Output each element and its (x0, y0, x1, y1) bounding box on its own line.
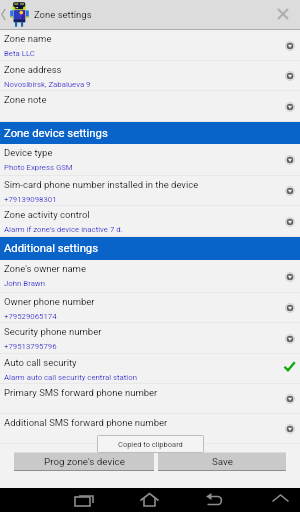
button[interactable]: Expand (285, 71, 295, 81)
staticText: Primary SMS forward phone number (4, 387, 158, 398)
staticText: Zone device settings (4, 127, 108, 140)
button[interactable]: Expand (285, 394, 295, 404)
staticText: Zone note (4, 94, 47, 105)
staticText: Zone settings (34, 9, 92, 20)
staticText: Zone address (4, 64, 62, 75)
staticText: Alarm if zone's device inactive 7 d. (4, 225, 123, 234)
button[interactable]: Prog zone's device (14, 452, 154, 471)
button[interactable]: Zone name (0, 30, 300, 61)
button[interactable]: Expand (285, 334, 295, 344)
button[interactable]: Save (158, 452, 286, 471)
staticText: Alarm auto call security central station (4, 373, 137, 382)
staticText: Additional SMS forward phone number (4, 417, 168, 428)
staticText: Zone's owner name (4, 263, 86, 274)
staticText: John Brawn (4, 279, 46, 288)
button[interactable]: Device type (0, 144, 300, 176)
button[interactable]: Zone's owner name (0, 260, 300, 293)
button[interactable]: Expand (285, 102, 295, 112)
button[interactable]: Expand (285, 424, 295, 434)
staticText: +79139098301 (4, 195, 57, 204)
staticText: Beta LLC (4, 49, 35, 58)
other: Enabled (284, 361, 295, 372)
staticText: Additional settings (4, 242, 99, 255)
button[interactable]: Primary SMS forward phone number (0, 384, 300, 414)
staticText: +79513795796 (4, 342, 57, 351)
staticText: Auto call security (4, 357, 77, 368)
button[interactable]: Zone note (0, 91, 300, 122)
staticText: Prog zone's device (44, 456, 125, 467)
button[interactable]: Owner phone number (0, 293, 300, 323)
button[interactable]: Show navigation (272, 494, 289, 503)
button[interactable]: Zone activity control (0, 206, 300, 237)
button[interactable]: Expand (285, 303, 295, 313)
button[interactable]: Close (277, 8, 289, 20)
button[interactable]: Additional SMS forward phone number (0, 414, 300, 444)
button[interactable]: Expand (285, 155, 295, 165)
button[interactable]: Expand (285, 217, 295, 227)
staticText: Owner phone number (4, 296, 95, 307)
button[interactable]: Expand (285, 272, 295, 282)
button[interactable]: Home (140, 492, 159, 507)
button[interactable]: Recents (75, 493, 94, 506)
button[interactable]: Sim-card phone number installed in the d… (0, 176, 300, 206)
staticText: Zone name (4, 33, 52, 44)
staticText: Novosibirsk, Zabalueva 9 (4, 80, 91, 89)
staticText: Sim-card phone number installed in the d… (4, 179, 199, 190)
staticText: Save (212, 456, 233, 467)
staticText: Copied to clipboard (118, 440, 183, 449)
staticText: Zone activity control (4, 209, 90, 220)
staticText: Security phone number (4, 326, 102, 337)
staticText: +79529065174 (4, 312, 57, 321)
button[interactable]: Back (206, 493, 225, 506)
staticText: Photo Express GSM (4, 163, 73, 172)
button[interactable]: Auto call security (0, 354, 300, 384)
button[interactable]: Expand (285, 41, 295, 51)
button[interactable]: Security phone number (0, 323, 300, 354)
button[interactable]: Expand (285, 186, 295, 196)
button[interactable]: Zone address (0, 61, 300, 91)
staticText: Device type (4, 147, 53, 158)
